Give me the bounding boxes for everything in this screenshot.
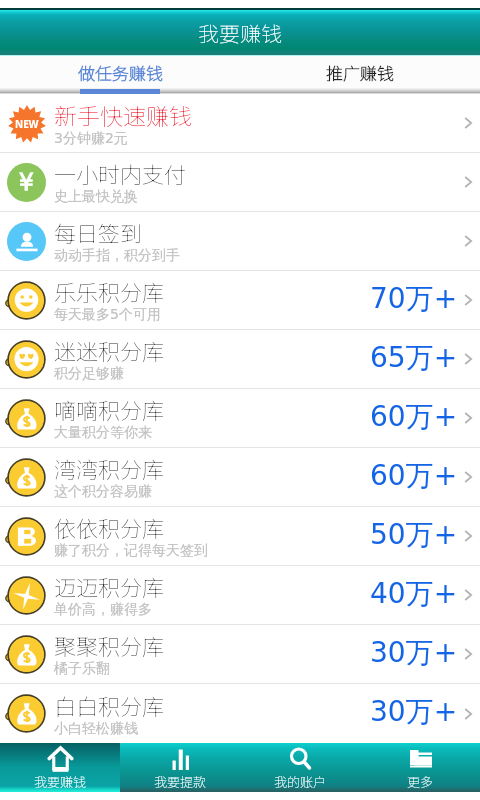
staticText: 做任务赚钱 [78, 60, 163, 85]
staticText: 橘子乐翻 [54, 660, 110, 678]
button[interactable]: 白白积分库 [0, 684, 480, 743]
staticText: 30万+ [370, 635, 458, 670]
button[interactable]: 迷迷积分库 [0, 330, 480, 389]
staticText: 这个积分容易赚 [54, 483, 152, 501]
staticText: 新手快速赚钱 [54, 98, 192, 131]
staticText: 单价高，赚得多 [54, 601, 152, 619]
button[interactable]: NEW [0, 94, 480, 153]
button[interactable]: 更多 [360, 743, 480, 792]
button[interactable]: 我要提款 [120, 743, 240, 792]
staticText: 每日签到 [54, 216, 143, 248]
staticText: 我要赚钱 [198, 18, 282, 48]
staticText: 70万+ [370, 281, 458, 316]
staticText: 一小时内支付 [54, 157, 187, 189]
staticText: 我的账户 [274, 772, 327, 791]
staticText: 50万+ [370, 517, 458, 552]
staticText: NEW [15, 117, 39, 131]
staticText: ¥ [19, 169, 34, 196]
staticText: 聚聚积分库 [54, 629, 165, 661]
staticText: 积分足够赚 [54, 365, 124, 383]
staticText: 更多 [407, 772, 434, 791]
staticText: 迷迷积分库 [54, 334, 165, 366]
staticText: 小白轻松赚钱 [54, 720, 138, 738]
staticText: 湾湾积分库 [54, 452, 165, 484]
staticText: 迈迈积分库 [54, 570, 165, 602]
staticText: 嘀嘀积分库 [54, 393, 165, 425]
staticText: 60万+ [370, 399, 458, 434]
staticText: 动动手指，积分到手 [54, 247, 180, 265]
button[interactable]: 做任务赚钱 [0, 56, 240, 88]
staticText: 60万+ [370, 458, 458, 493]
staticText: 我要提款 [154, 772, 207, 791]
button[interactable]: 我要赚钱 [0, 743, 120, 792]
staticText: 40万+ [370, 576, 458, 611]
staticText: 乐乐积分库 [54, 275, 165, 307]
button[interactable]: 依依积分库 [0, 507, 480, 566]
button[interactable]: 我的账户 [240, 743, 360, 792]
staticText: 依依积分库 [54, 511, 165, 543]
button[interactable]: 聚聚积分库 [0, 625, 480, 684]
staticText: 3分钟赚2元 [54, 130, 128, 148]
staticText: 赚了积分，记得每天签到 [54, 542, 208, 560]
button[interactable]: 湾湾积分库 [0, 448, 480, 507]
button[interactable]: 嘀嘀积分库 [0, 389, 480, 448]
staticText: 推广赚钱 [326, 60, 394, 85]
staticText: 30万+ [370, 694, 458, 729]
button[interactable]: 每日签到 [0, 212, 480, 271]
staticText: 大量积分等你来 [54, 424, 152, 442]
staticText: 我要赚钱 [34, 772, 87, 791]
button[interactable]: 推广赚钱 [240, 56, 480, 88]
staticText: 史上最快兑换 [54, 188, 138, 206]
staticText: 每天最多5个可用 [54, 306, 161, 324]
button[interactable]: 乐乐积分库 [0, 271, 480, 330]
button[interactable]: 迈迈积分库 [0, 566, 480, 625]
staticText: 白白积分库 [54, 689, 165, 721]
staticText: 65万+ [370, 340, 458, 375]
button[interactable]: ¥ [0, 153, 480, 212]
